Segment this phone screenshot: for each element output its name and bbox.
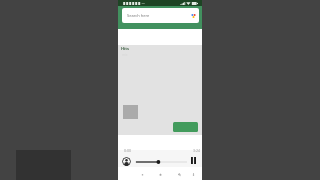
staticText: Search here xyxy=(127,13,150,18)
button[interactable]: Search xyxy=(174,169,184,179)
button[interactable]: Pause xyxy=(188,156,198,165)
button[interactable]: Profile xyxy=(188,169,198,179)
staticText: 0:00 xyxy=(124,148,131,153)
button[interactable] xyxy=(173,122,198,132)
staticText: Hits xyxy=(121,46,129,51)
button[interactable]: Search here xyxy=(122,8,199,23)
button[interactable]: Account xyxy=(122,157,131,166)
staticText: 3:24 xyxy=(193,148,200,153)
button[interactable]: Home xyxy=(137,169,147,179)
button[interactable]: Library xyxy=(155,169,165,179)
